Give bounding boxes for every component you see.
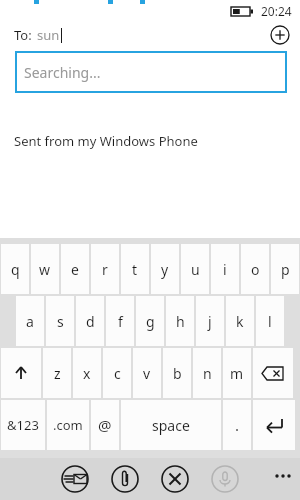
button[interactable]: m xyxy=(223,348,251,398)
button[interactable]: y xyxy=(151,244,179,294)
button[interactable]: g xyxy=(136,296,164,346)
staticText: c xyxy=(114,364,121,383)
button[interactable]: More options xyxy=(266,458,300,500)
staticText: m xyxy=(230,364,244,383)
button[interactable]: j xyxy=(196,296,224,346)
button[interactable]: Attach xyxy=(108,462,142,496)
staticText: . xyxy=(235,415,240,435)
button[interactable]: @ xyxy=(91,400,119,450)
button[interactable]: w xyxy=(31,244,59,294)
button[interactable]: b xyxy=(163,348,191,398)
button[interactable]: d xyxy=(76,296,104,346)
staticText: g xyxy=(146,312,155,331)
staticText: w xyxy=(39,260,51,279)
button[interactable]: Voice input xyxy=(208,462,242,496)
button[interactable]: t xyxy=(121,244,149,294)
button[interactable]: p xyxy=(271,244,299,294)
button[interactable]: . xyxy=(223,400,251,450)
button[interactable]: k xyxy=(226,296,254,346)
staticText: e xyxy=(71,260,79,279)
staticText: &123 xyxy=(7,416,39,434)
button[interactable]: v xyxy=(133,348,161,398)
staticText: i xyxy=(223,260,227,279)
button[interactable]: q xyxy=(1,244,29,294)
staticText: r xyxy=(102,260,108,279)
staticText: sun xyxy=(37,26,60,44)
button[interactable]: i xyxy=(211,244,239,294)
staticText: @ xyxy=(98,415,112,435)
button[interactable]: Enter xyxy=(253,400,295,450)
button[interactable]: Send xyxy=(58,462,92,496)
button[interactable]: u xyxy=(181,244,209,294)
staticText: p xyxy=(281,260,290,279)
staticText: k xyxy=(236,312,244,331)
button[interactable]: .com xyxy=(47,400,89,450)
staticText: t xyxy=(132,260,138,279)
button[interactable]: Backspace xyxy=(253,348,293,398)
staticText: To: xyxy=(14,26,32,44)
staticText: a xyxy=(26,312,34,331)
staticText: l xyxy=(268,312,272,331)
staticText: q xyxy=(11,260,20,279)
button[interactable]: &123 xyxy=(1,400,45,450)
button[interactable]: Shift xyxy=(1,348,41,398)
button[interactable]: c xyxy=(103,348,131,398)
staticText: j xyxy=(208,312,212,331)
staticText: x xyxy=(83,364,91,383)
staticText: h xyxy=(176,312,185,331)
staticText: Searching... xyxy=(24,63,101,82)
button[interactable]: x xyxy=(73,348,101,398)
staticText: o xyxy=(251,260,260,279)
button[interactable]: r xyxy=(91,244,119,294)
staticText: z xyxy=(54,364,61,383)
staticText: s xyxy=(57,312,64,331)
staticText: u xyxy=(191,260,200,279)
button[interactable]: Add recipient xyxy=(270,25,290,45)
staticText: space xyxy=(152,416,190,435)
button[interactable]: To: xyxy=(0,22,300,48)
button[interactable]: a xyxy=(16,296,44,346)
staticText: y xyxy=(161,260,169,279)
staticText: n xyxy=(203,364,212,383)
staticText: 20:24 xyxy=(261,3,292,19)
button[interactable]: space xyxy=(121,400,221,450)
button[interactable]: s xyxy=(46,296,74,346)
staticText: f xyxy=(118,312,123,331)
button[interactable]: Searching... xyxy=(15,51,287,93)
staticText: Sent from my Windows Phone xyxy=(14,132,198,150)
staticText: d xyxy=(86,312,95,331)
button[interactable]: o xyxy=(241,244,269,294)
button[interactable]: Close xyxy=(158,462,192,496)
staticText: .com xyxy=(53,416,83,434)
staticText: b xyxy=(173,364,182,383)
staticText: v xyxy=(143,364,151,383)
button[interactable]: e xyxy=(61,244,89,294)
button[interactable]: Sent from my Windows Phone xyxy=(0,96,300,218)
button[interactable]: z xyxy=(43,348,71,398)
button[interactable]: h xyxy=(166,296,194,346)
button[interactable]: n xyxy=(193,348,221,398)
button[interactable]: l xyxy=(256,296,284,346)
button[interactable]: f xyxy=(106,296,134,346)
